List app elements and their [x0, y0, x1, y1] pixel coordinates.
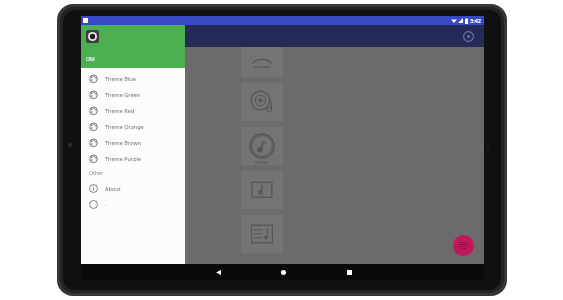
staticText: Theme Brown	[105, 139, 141, 146]
staticText: Theme Green	[105, 91, 141, 98]
button[interactable]: Theme Purple	[81, 150, 185, 166]
button[interactable]: Theme Green	[81, 86, 185, 102]
button[interactable]	[241, 171, 283, 209]
staticText: Theme Purple	[105, 155, 142, 162]
button[interactable]: Home	[277, 266, 289, 278]
button[interactable]	[241, 39, 283, 77]
staticText: Other	[89, 170, 103, 177]
staticText: Theme Blue	[105, 75, 136, 82]
staticText: SONGS	[255, 160, 269, 165]
staticText: ·	[105, 201, 107, 208]
button[interactable]: Theme Brown	[81, 134, 185, 150]
button[interactable]: OM	[81, 25, 185, 68]
button[interactable]: About	[81, 180, 185, 196]
staticText: Theme Red	[105, 107, 135, 114]
button[interactable]: Shuffle all	[453, 235, 474, 256]
staticText: 3:42	[470, 17, 481, 24]
button[interactable]: Back	[212, 266, 224, 278]
staticText: About	[105, 185, 121, 192]
button[interactable]: Recents	[343, 266, 355, 278]
staticText: OM	[86, 56, 95, 63]
button[interactable]: ·	[81, 196, 185, 212]
button[interactable]	[241, 83, 283, 121]
button[interactable]: Theme Blue	[81, 70, 185, 86]
button[interactable]	[241, 215, 283, 253]
button[interactable]: SONGS	[241, 127, 283, 165]
button[interactable]: Search	[460, 28, 476, 44]
staticText: Theme Orange	[105, 123, 144, 130]
button[interactable]: Theme Red	[81, 102, 185, 118]
button[interactable]: Theme Orange	[81, 118, 185, 134]
